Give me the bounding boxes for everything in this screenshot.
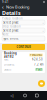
staticText: ‹ (2, 3, 4, 11)
staticText: PENDING (30, 53, 42, 57)
staticText: Select place (3, 21, 19, 24)
staticText: Paid (36, 68, 42, 71)
staticText: Distance (4, 63, 15, 66)
button[interactable]: Back (1, 4, 5, 9)
staticText: ◁ (10, 93, 13, 98)
staticText: New Booking (6, 4, 29, 10)
staticText: Type a note (3, 37, 19, 40)
staticText: Drop location (2, 25, 21, 28)
staticText: Fare (4, 58, 9, 61)
staticText: Note (2, 33, 9, 36)
staticText: $24.50 (32, 58, 43, 61)
button[interactable]: Recents (35, 94, 38, 97)
staticText: CONTINUE (16, 45, 30, 49)
staticText: ⌄ (42, 21, 44, 24)
button[interactable]: Home (23, 94, 26, 97)
staticText: 9:41 (2, 0, 9, 4)
staticText: Pickup location (2, 17, 23, 20)
staticText: 7.2 km (34, 63, 43, 66)
button[interactable]: Back (9, 92, 15, 98)
staticText: Select place (3, 29, 19, 32)
button[interactable]: CONTINUE (2, 44, 45, 50)
button[interactable]: New message (38, 80, 45, 87)
staticText: Status (4, 68, 11, 71)
staticText: Booking #4182 (4, 51, 17, 59)
staticText: Details (2, 9, 21, 17)
staticText: ⌄ (42, 29, 44, 32)
